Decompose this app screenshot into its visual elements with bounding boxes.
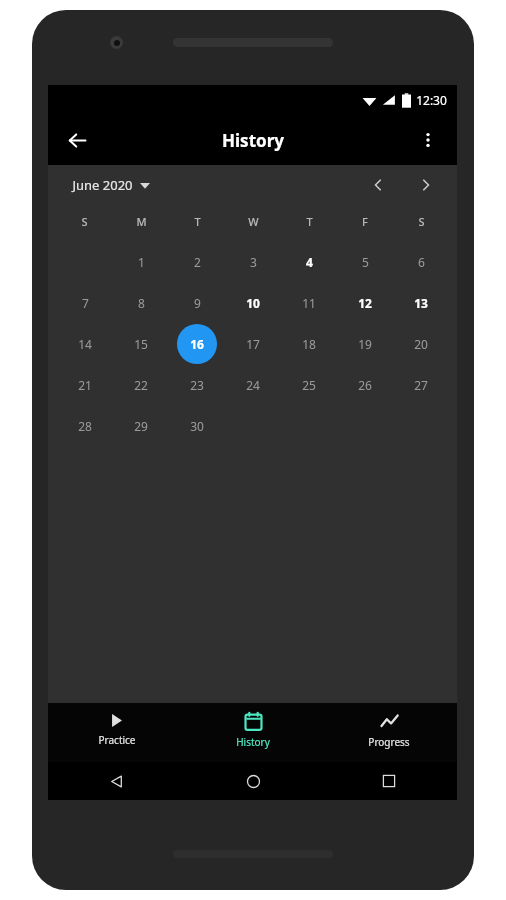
staticText: 21 (78, 377, 92, 393)
staticText: 7 (82, 295, 89, 311)
staticText: 5 (362, 254, 369, 270)
staticText: 13 (414, 295, 428, 311)
staticText: 25 (302, 377, 316, 393)
staticText: M (136, 214, 147, 229)
staticText: 2 (194, 254, 201, 270)
staticText: 16 (190, 336, 204, 352)
button[interactable]: 5 (345, 242, 385, 282)
button[interactable]: 14 (65, 324, 105, 364)
button[interactable]: 30 (177, 406, 217, 446)
button[interactable]: 10 (233, 283, 273, 323)
button[interactable]: 9 (177, 283, 217, 323)
staticText: 1 (138, 254, 145, 270)
staticText: 15 (134, 336, 148, 352)
button[interactable]: 1 (121, 242, 161, 282)
button[interactable]: Home (185, 762, 321, 800)
staticText: 12 (358, 295, 372, 311)
button[interactable]: 28 (65, 406, 105, 446)
button[interactable]: 8 (121, 283, 161, 323)
button[interactable]: Back (48, 762, 185, 800)
button[interactable]: More options (407, 119, 449, 161)
button[interactable]: Recent apps (321, 762, 457, 800)
button[interactable]: 12 (345, 283, 385, 323)
button[interactable]: 23 (177, 365, 217, 405)
button[interactable]: 15 (121, 324, 161, 364)
staticText: 9 (194, 295, 201, 311)
button[interactable]: 25 (289, 365, 329, 405)
button[interactable]: 16 (177, 324, 217, 364)
button[interactable]: 27 (401, 365, 441, 405)
button[interactable]: 19 (345, 324, 385, 364)
button[interactable]: 11 (289, 283, 329, 323)
staticText: 11 (302, 295, 316, 311)
staticText: F (362, 214, 368, 229)
button[interactable]: Back (56, 119, 98, 161)
button[interactable]: 18 (289, 324, 329, 364)
button[interactable]: Next month (409, 168, 443, 202)
staticText: June 2020 (72, 176, 133, 194)
button[interactable]: 3 (233, 242, 273, 282)
button[interactable]: 24 (233, 365, 273, 405)
button[interactable]: 7 (65, 283, 105, 323)
staticText: History (222, 129, 284, 152)
button[interactable]: 20 (401, 324, 441, 364)
staticText: 14 (78, 336, 92, 352)
staticText: 30 (190, 418, 204, 434)
button[interactable]: History (185, 703, 321, 762)
staticText: 28 (78, 418, 92, 434)
staticText: 3 (250, 254, 257, 270)
staticText: 8 (138, 295, 145, 311)
staticText: 23 (190, 377, 204, 393)
staticText: History (236, 735, 270, 749)
button[interactable]: 22 (121, 365, 161, 405)
staticText: 20 (414, 336, 428, 352)
staticText: 4 (306, 254, 313, 270)
button[interactable]: Progress (321, 703, 457, 762)
button[interactable]: June 2020 (68, 172, 154, 198)
staticText: Practice (98, 733, 136, 747)
staticText: 18 (302, 336, 316, 352)
staticText: T (194, 214, 201, 229)
button[interactable]: 17 (233, 324, 273, 364)
staticText: 26 (358, 377, 372, 393)
button[interactable]: 4 (289, 242, 329, 282)
staticText: 19 (358, 336, 372, 352)
button[interactable]: Previous month (361, 168, 395, 202)
staticText: 22 (134, 377, 148, 393)
staticText: T (306, 214, 313, 229)
staticText: 27 (414, 377, 428, 393)
staticText: S (418, 214, 425, 229)
staticText: 12:30 (416, 92, 447, 108)
staticText: S (81, 214, 88, 229)
staticText: Progress (368, 735, 410, 749)
button[interactable]: Practice (48, 703, 185, 762)
staticText: 10 (246, 295, 260, 311)
button[interactable]: 6 (401, 242, 441, 282)
button[interactable]: 2 (177, 242, 217, 282)
staticText: 29 (134, 418, 148, 434)
staticText: 6 (418, 254, 425, 270)
staticText: W (248, 214, 259, 229)
button[interactable]: 21 (65, 365, 105, 405)
staticText: 17 (246, 336, 260, 352)
button[interactable]: 29 (121, 406, 161, 446)
staticText: 24 (246, 377, 260, 393)
button[interactable]: 13 (401, 283, 441, 323)
button[interactable]: 26 (345, 365, 385, 405)
